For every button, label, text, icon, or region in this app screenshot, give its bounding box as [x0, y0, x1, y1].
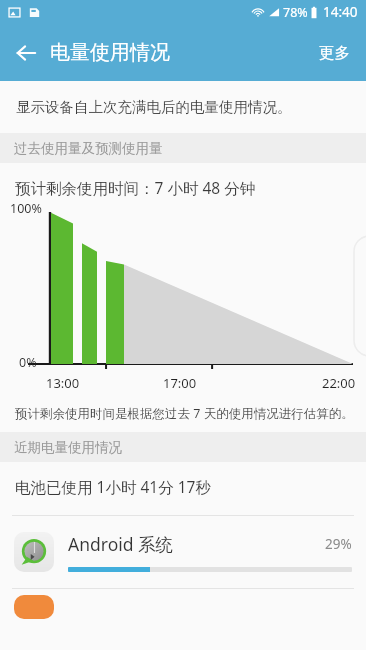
staticText: 更多: [319, 43, 350, 63]
staticText: 17:00: [163, 374, 197, 392]
staticText: 电量使用情况: [50, 40, 170, 65]
staticText: 22:00: [322, 374, 356, 392]
staticText: 预计剩余使用时间：7 小时 48 分钟: [15, 177, 256, 198]
staticText: Android 系统: [68, 532, 174, 556]
staticText: 100%: [10, 200, 42, 217]
staticText: 78%: [283, 4, 308, 21]
button[interactable]: 更多: [307, 33, 362, 73]
staticText: 29%: [325, 535, 352, 553]
staticText: 预计剩余使用时间是根据您过去 7 天的使用情况进行估算的。: [15, 405, 354, 422]
staticText: 14:40: [323, 3, 358, 21]
staticText: 显示设备自上次充满电后的电量使用情况。: [16, 98, 292, 116]
staticText: 近期电量使用情况: [14, 439, 122, 456]
staticText: 0%: [19, 354, 37, 371]
staticText: 过去使用量及预测使用量: [14, 140, 163, 157]
button[interactable]: Android 系统: [0, 516, 366, 588]
staticText: 13:00: [46, 374, 80, 392]
staticText: 电池已使用 1小时 41分 17秒: [15, 476, 211, 497]
button[interactable]: Back: [6, 33, 46, 73]
